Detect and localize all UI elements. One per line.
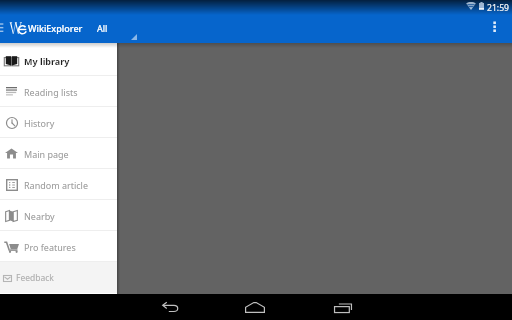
button[interactable]: Recent apps [325, 294, 361, 320]
button[interactable]: Feedback [0, 262, 117, 293]
button[interactable]: My library [0, 45, 117, 76]
button[interactable]: Nearby [0, 200, 117, 231]
staticText: Main page [24, 148, 69, 160]
button[interactable]: Reading lists [0, 76, 117, 107]
staticText: WikiExplorer [28, 22, 83, 34]
button[interactable]: All [97, 22, 108, 34]
button[interactable]: Random article [0, 169, 117, 200]
staticText: Reading lists [24, 86, 78, 98]
button[interactable]: Home [237, 294, 273, 320]
staticText: 21:59 [487, 2, 509, 14]
button[interactable]: Pro features [0, 231, 117, 262]
button[interactable]: Main page [0, 138, 117, 169]
button[interactable]: Open navigation drawer [0, 22, 5, 33]
staticText: Nearby [24, 210, 55, 222]
button[interactable]: More options [489, 21, 501, 33]
button[interactable]: History [0, 107, 117, 138]
staticText: Pro features [24, 241, 76, 253]
staticText: My library [24, 55, 70, 67]
staticText: Feedback [16, 272, 54, 284]
staticText: All [97, 22, 108, 34]
staticText: Random article [24, 179, 88, 191]
staticText: History [24, 117, 55, 129]
button[interactable]: Back [152, 294, 188, 320]
